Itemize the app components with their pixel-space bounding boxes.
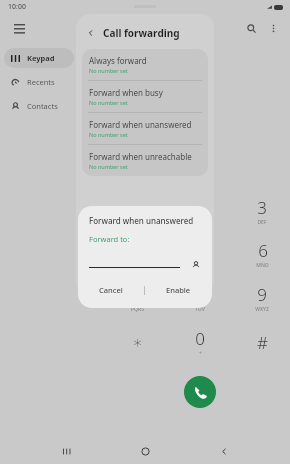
staticText: TUV bbox=[195, 306, 205, 313]
staticText: No number set bbox=[89, 67, 128, 74]
staticText: Forward when unanswered bbox=[89, 215, 194, 226]
staticText: Recents bbox=[27, 77, 55, 87]
button[interactable]: 3 bbox=[238, 193, 286, 229]
staticText: WXYZ bbox=[255, 306, 269, 313]
staticText: DEF bbox=[257, 219, 267, 226]
button[interactable]: 7 bbox=[113, 280, 161, 316]
button[interactable]: Back bbox=[83, 25, 99, 41]
staticText: Cancel bbox=[99, 285, 123, 295]
staticText: + bbox=[199, 350, 202, 357]
button[interactable]: # bbox=[238, 324, 286, 360]
staticText: Always forward bbox=[89, 55, 147, 66]
button[interactable]: Back bbox=[212, 439, 236, 463]
staticText: 3 bbox=[257, 196, 267, 219]
button[interactable]: 5 bbox=[176, 236, 224, 272]
button[interactable]: Keypad bbox=[4, 48, 74, 68]
staticText: Forward when unreachable bbox=[89, 151, 192, 162]
button[interactable]: 4 bbox=[113, 236, 161, 272]
staticText: 0 bbox=[195, 327, 205, 350]
button[interactable]: 6 bbox=[238, 236, 286, 272]
staticText: Enable bbox=[166, 285, 191, 295]
button[interactable]: Search bbox=[242, 19, 260, 37]
button[interactable]: Cancel bbox=[78, 279, 144, 301]
staticText: # bbox=[257, 331, 268, 354]
staticText: 10:00 bbox=[8, 2, 26, 12]
button[interactable]: 2 bbox=[176, 193, 224, 229]
staticText: Call forwarding bbox=[103, 26, 180, 40]
button[interactable]: Call bbox=[184, 376, 216, 408]
button[interactable]: Recents bbox=[4, 72, 74, 92]
button[interactable]: Recent apps bbox=[55, 439, 79, 463]
staticText: PQRS bbox=[131, 306, 144, 313]
staticText: Contacts bbox=[27, 101, 58, 111]
button[interactable]: Home bbox=[133, 439, 157, 463]
staticText: No number set bbox=[89, 163, 128, 170]
staticText: No number set bbox=[89, 99, 128, 106]
button[interactable]: 0 bbox=[176, 324, 224, 360]
staticText: ∗ bbox=[132, 332, 143, 352]
staticText: Forward when unanswered bbox=[89, 119, 192, 130]
staticText: Keypad bbox=[27, 53, 55, 63]
button[interactable]: Choose contact bbox=[189, 258, 202, 271]
button[interactable]: Always forward bbox=[82, 49, 208, 80]
button[interactable]: Forward when unreachable bbox=[82, 145, 208, 176]
staticText: Forward when busy bbox=[89, 87, 163, 98]
button[interactable]: Menu bbox=[6, 16, 32, 42]
staticText: 9 bbox=[257, 283, 267, 306]
staticText: No number set bbox=[89, 131, 128, 138]
button[interactable]: ∗ bbox=[113, 324, 161, 360]
staticText: 6 bbox=[258, 239, 268, 262]
button[interactable]: More options bbox=[264, 19, 282, 37]
button[interactable]: Forward when busy bbox=[82, 81, 208, 112]
staticText: MNO bbox=[256, 262, 269, 269]
staticText: Forward to: bbox=[89, 234, 130, 244]
staticText: 1 bbox=[132, 200, 142, 223]
button[interactable]: 8 bbox=[176, 280, 224, 316]
button[interactable]: 1 bbox=[113, 193, 161, 229]
staticText: 5 bbox=[195, 239, 205, 262]
button[interactable]: Forward when unanswered bbox=[82, 113, 208, 144]
staticText: GHI bbox=[132, 262, 142, 269]
button[interactable]: Contacts bbox=[4, 96, 74, 116]
button[interactable]: 9 bbox=[238, 280, 286, 316]
staticText: JKL bbox=[196, 262, 204, 269]
button[interactable]: Enable bbox=[145, 279, 212, 301]
staticText: 2 bbox=[195, 196, 205, 219]
